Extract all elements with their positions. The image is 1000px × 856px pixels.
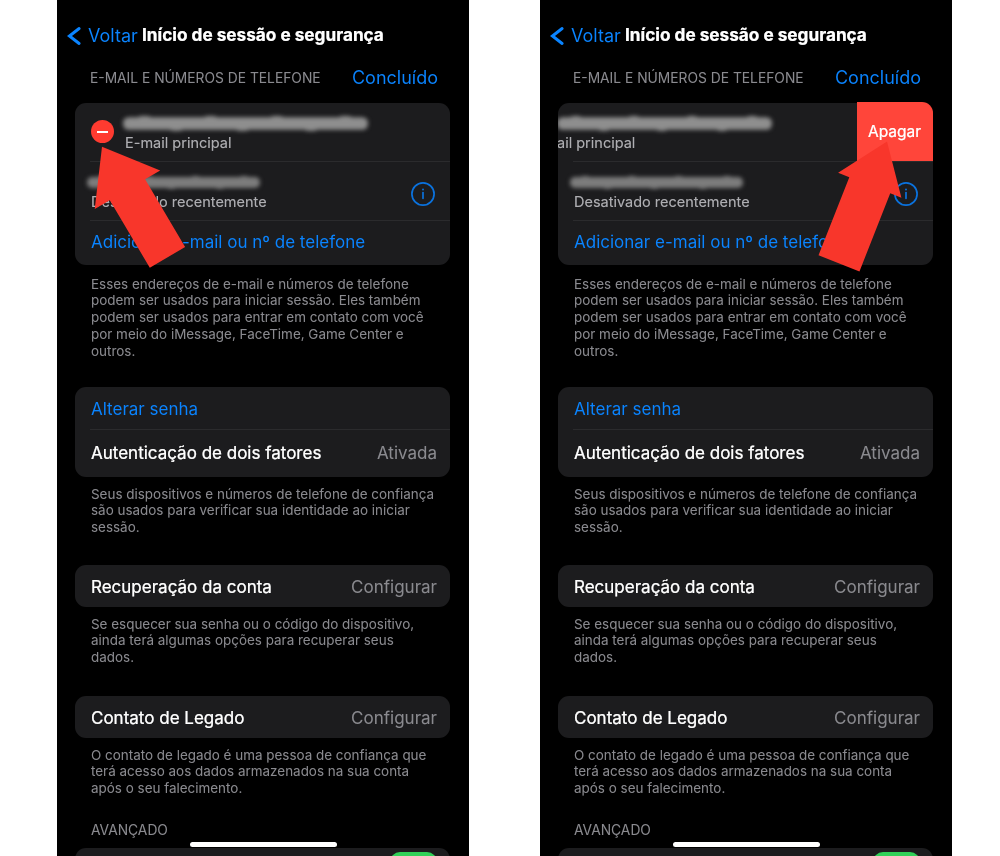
staticText: Ativada	[275, 443, 437, 464]
staticText: O contato de legado é uma pessoa de conf…	[574, 747, 910, 797]
staticText: O contato de legado é uma pessoa de conf…	[91, 747, 427, 797]
staticText: Autenticação de dois fatores	[91, 443, 322, 464]
button[interactable]	[75, 161, 450, 220]
staticText: Recuperação da conta	[91, 577, 272, 598]
button[interactable]	[558, 848, 933, 856]
button[interactable]: Apagar	[857, 102, 933, 161]
button[interactable]	[558, 103, 933, 161]
button[interactable]	[75, 848, 450, 856]
staticText: Se esquecer sua senha ou o código do dis…	[574, 616, 898, 666]
staticText: Esses endereços de e-mail e números de t…	[91, 276, 424, 360]
staticText: Alterar senha	[91, 399, 199, 420]
button[interactable]	[75, 220, 450, 265]
staticText: Voltar	[571, 25, 621, 47]
staticText: Início de sessão e segurança	[142, 24, 384, 45]
button[interactable]: Recuperação da conta	[75, 565, 450, 607]
staticText: Recuperação da conta	[574, 577, 755, 598]
button[interactable]	[558, 387, 933, 429]
staticText: Seus dispositivos e números de telefone …	[91, 486, 435, 536]
staticText: Autenticação de dois fatores	[574, 443, 805, 464]
button[interactable]: Voltar	[64, 20, 138, 52]
staticText: Concluído	[724, 67, 921, 856]
staticText: E-MAIL E NÚMEROS DE TELEFONE	[90, 70, 321, 87]
staticText: Concluído	[241, 67, 438, 856]
staticText: Se esquecer sua senha ou o código do dis…	[91, 616, 415, 666]
staticText: Configurar	[758, 708, 920, 729]
button[interactable]: Contato de Legado	[558, 696, 933, 738]
staticText: ail principal	[558, 134, 636, 152]
button[interactable]	[75, 387, 450, 429]
staticText: Ativada	[758, 443, 920, 464]
button[interactable]: Informação	[411, 182, 435, 206]
staticText: Desativado recentemente	[574, 193, 750, 211]
staticText: Adicionar e-mail ou nº de telefone	[574, 232, 849, 253]
button[interactable]	[558, 161, 933, 220]
staticText: E-MAIL E NÚMEROS DE TELEFONE	[573, 70, 804, 87]
staticText: Configurar	[758, 577, 920, 598]
button[interactable]: Contato de Legado	[75, 696, 450, 738]
button[interactable]: Concluído	[241, 67, 438, 856]
staticText: Configurar	[275, 708, 437, 729]
button[interactable]	[558, 429, 933, 477]
button[interactable]	[75, 429, 450, 477]
staticText: E-mail principal	[125, 134, 232, 152]
staticText: Desativado recentemente	[91, 193, 267, 211]
button[interactable]	[75, 103, 450, 161]
staticText: AVANÇADO	[91, 822, 168, 839]
button[interactable]: Voltar	[547, 20, 621, 52]
staticText: Alterar senha	[574, 399, 682, 420]
staticText: Contato de Legado	[91, 708, 245, 729]
staticText: Voltar	[88, 25, 138, 47]
staticText: Esses endereços de e-mail e números de t…	[574, 276, 907, 360]
staticText: AVANÇADO	[574, 822, 651, 839]
button[interactable]: Recuperação da conta	[558, 565, 933, 607]
button[interactable]: Concluído	[724, 67, 921, 856]
staticText: Adicionar e-mail ou nº de telefone	[91, 232, 366, 253]
staticText: Contato de Legado	[574, 708, 728, 729]
button[interactable]: Informação	[894, 182, 918, 206]
staticText: Início de sessão e segurança	[625, 24, 867, 45]
button[interactable]	[558, 220, 933, 265]
staticText: Seus dispositivos e números de telefone …	[574, 486, 918, 536]
staticText: Apagar	[868, 122, 922, 141]
staticText: Configurar	[275, 577, 437, 598]
button[interactable]: Remover e-mail	[91, 120, 114, 143]
